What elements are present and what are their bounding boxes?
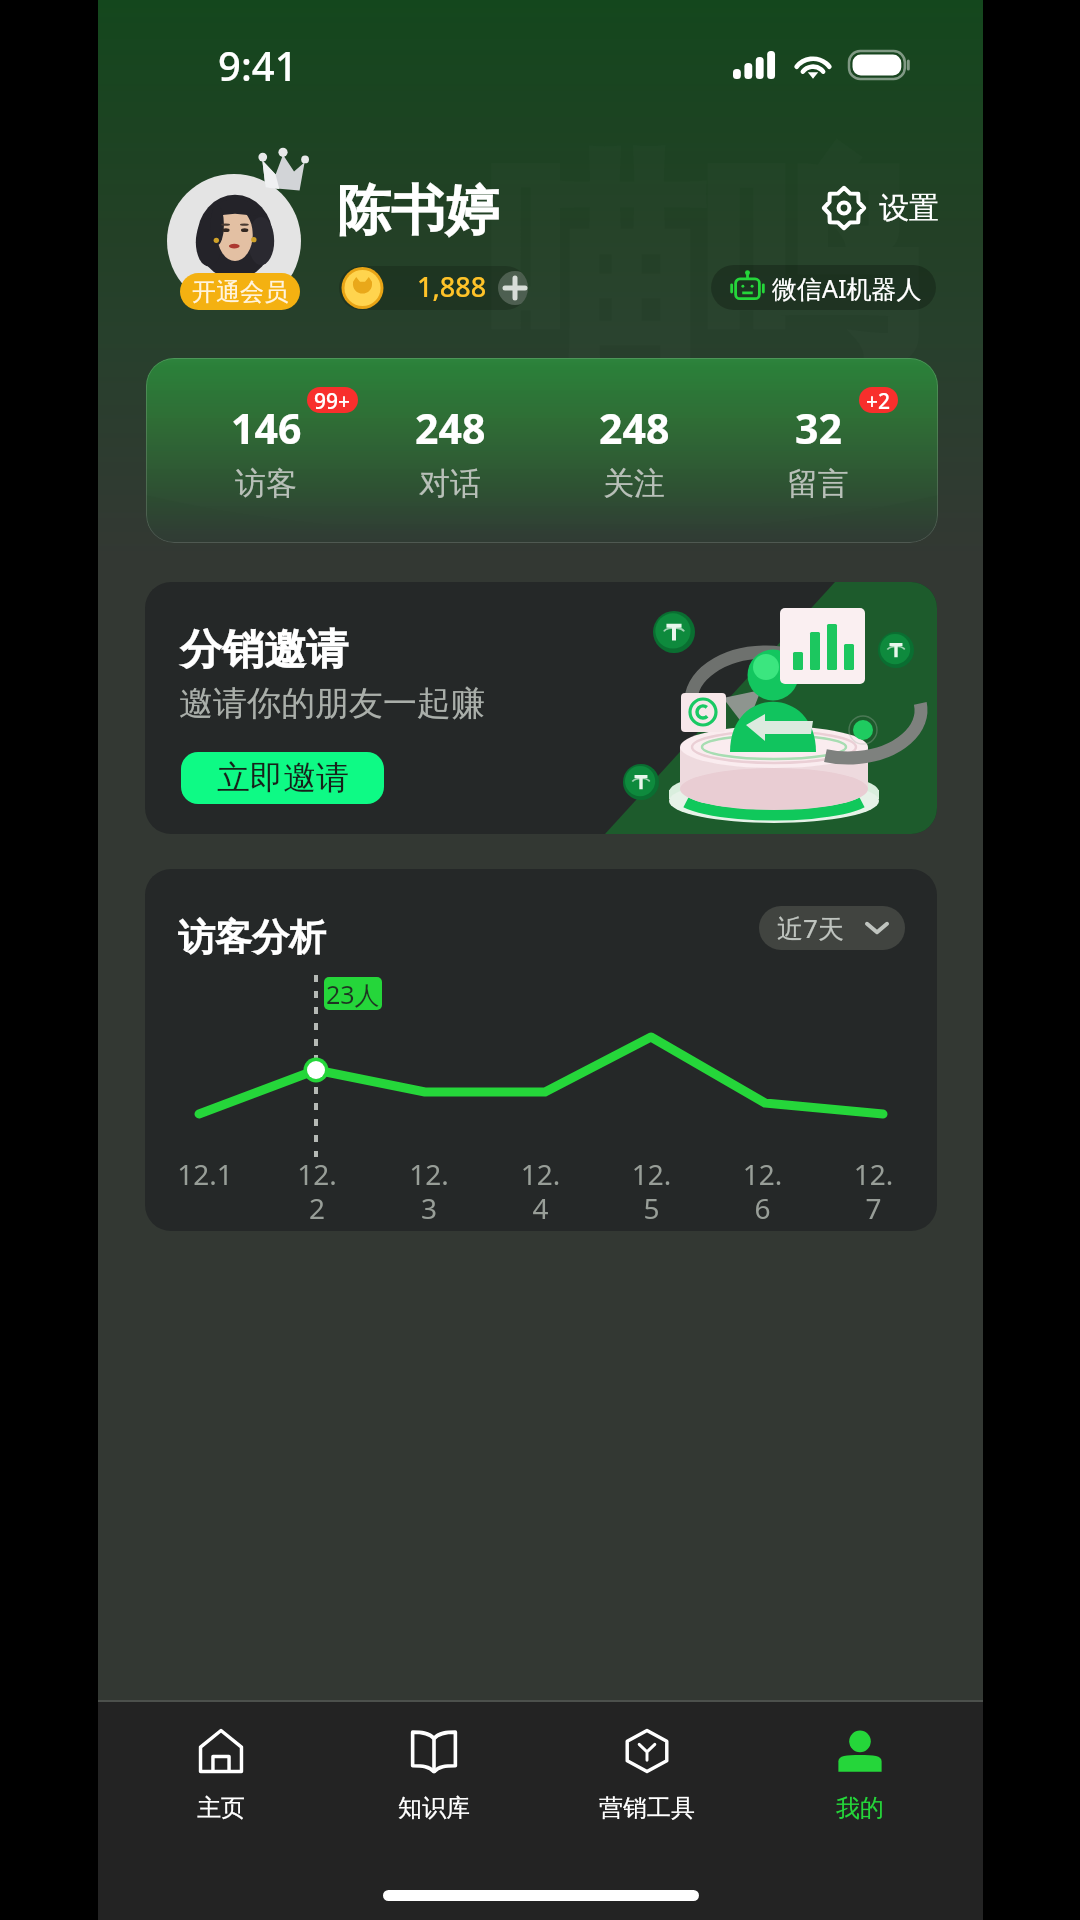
staticText: 12. 7 <box>818 1155 929 1227</box>
staticText: 知识库 <box>398 1793 470 1823</box>
button[interactable]: 248 <box>542 400 726 503</box>
other: Add coins <box>498 271 528 305</box>
staticText: 12.1 <box>149 1155 261 1193</box>
button[interactable]: 立即邀请 <box>181 752 384 804</box>
staticText: 近7天 <box>777 910 844 946</box>
staticText: 12. 2 <box>261 1155 373 1227</box>
staticText: +2 <box>866 387 891 413</box>
button[interactable]: 主页 <box>115 1728 327 1823</box>
staticText: 12. 4 <box>485 1155 596 1227</box>
staticText: 留言 <box>787 464 849 503</box>
staticText: 营销工具 <box>599 1793 695 1823</box>
button[interactable]: 营销工具 <box>540 1728 753 1823</box>
staticText: 12. 5 <box>596 1155 707 1227</box>
button[interactable]: 知识库 <box>327 1728 540 1823</box>
staticText: 32 <box>795 400 842 456</box>
staticText: 邀请你的朋友一起赚 <box>179 682 485 725</box>
staticText: 248 <box>599 400 670 456</box>
staticText: 我的 <box>836 1793 884 1823</box>
staticText: 9:41 <box>218 38 298 92</box>
staticText: 访客分析 <box>178 914 326 961</box>
staticText: 关注 <box>603 464 665 503</box>
button[interactable]: 分销邀请 <box>145 582 937 834</box>
button[interactable]: 32 <box>726 400 910 503</box>
staticText: 陈书婷 <box>337 177 499 245</box>
staticText: 1,888 <box>417 268 487 305</box>
button[interactable]: 设置 <box>820 184 939 232</box>
staticText: 对话 <box>419 464 481 503</box>
button[interactable]: 1,888 <box>339 266 528 310</box>
staticText: 开通会员 <box>192 277 288 307</box>
staticText: 248 <box>415 400 486 456</box>
button[interactable]: 146 <box>174 400 358 503</box>
staticText: 设置 <box>879 189 939 227</box>
staticText: 主页 <box>197 1793 245 1823</box>
staticText: 访客 <box>235 464 297 503</box>
staticText: 12. 6 <box>707 1155 818 1227</box>
staticText: 12. 3 <box>373 1155 485 1227</box>
staticText: 立即邀请 <box>217 757 349 799</box>
button[interactable]: 开通会员 <box>180 273 300 310</box>
button[interactable]: 微信AI机器人 <box>711 265 936 310</box>
staticText: 146 <box>231 400 302 456</box>
staticText: 分销邀请 <box>180 624 348 677</box>
staticText: 23人 <box>326 977 380 1010</box>
staticText: 喵呜 <box>486 128 916 399</box>
staticText: 微信AI机器人 <box>772 271 922 305</box>
button[interactable]: 近7天 <box>759 906 905 950</box>
staticText: 99+ <box>314 387 351 413</box>
button[interactable]: 248 <box>358 400 542 503</box>
button[interactable]: 我的 <box>753 1728 966 1823</box>
